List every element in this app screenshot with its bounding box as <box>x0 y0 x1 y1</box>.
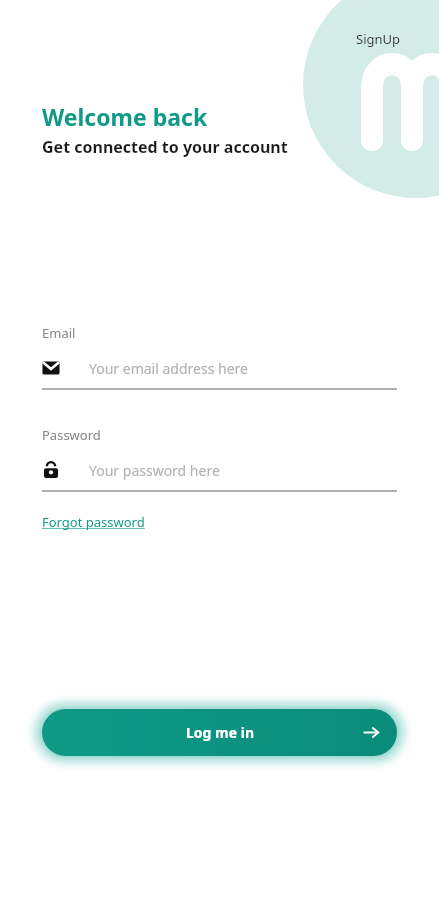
staticText: Your email address here <box>89 359 248 378</box>
staticText: Welcome back <box>42 101 208 132</box>
staticText: Your password here <box>89 461 220 480</box>
staticText: Password <box>42 426 101 444</box>
staticText: Email <box>42 324 76 342</box>
staticText: Get connected to your account <box>42 136 288 158</box>
button[interactable]: Email <box>42 355 397 381</box>
button[interactable]: Password <box>42 457 397 483</box>
staticText: Log me in <box>186 723 254 742</box>
button[interactable]: SignUp <box>352 27 405 51</box>
button[interactable]: Forgot password <box>42 513 145 531</box>
other: Continue <box>363 724 380 741</box>
staticText: SignUp <box>356 30 401 48</box>
other: Password <box>42 461 60 479</box>
button[interactable]: Log me in <box>42 709 397 756</box>
staticText: Forgot password <box>42 513 145 531</box>
other: Email <box>42 359 60 377</box>
